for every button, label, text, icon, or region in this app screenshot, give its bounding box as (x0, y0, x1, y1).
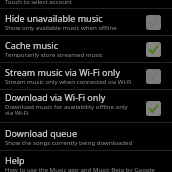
staticText: Download music for availability offline … (5, 102, 135, 117)
staticText: Show only available music when offline (5, 23, 117, 31)
button[interactable]: Help (0, 151, 172, 172)
staticText: Download queue (5, 127, 77, 139)
staticText: Help (5, 154, 25, 166)
button[interactable]: Hide unavailable music (0, 9, 172, 35)
staticText: Temporarily store streamed music (5, 50, 103, 58)
button[interactable]: Cache music (0, 36, 172, 62)
staticText: Hide unavailable music (5, 12, 103, 24)
staticText: Stream music via Wi-Fi only (5, 66, 121, 78)
staticText: Show the songs currently being downloade… (5, 138, 133, 146)
staticText: Touch to select account (5, 0, 72, 5)
staticText: Download via Wi-Fi only (5, 91, 106, 103)
staticText: Stream music only when connected via Wi-… (5, 77, 132, 85)
staticText: Cache music (5, 39, 58, 51)
button[interactable]: Download via Wi-Fi only (0, 90, 172, 122)
button[interactable]: Stream music via Wi-Fi only (0, 63, 172, 89)
button[interactable]: Touch to select account (0, 0, 172, 8)
button[interactable]: Download queue (0, 123, 172, 150)
staticText: How to use the Music app and Music Beta … (5, 165, 155, 172)
